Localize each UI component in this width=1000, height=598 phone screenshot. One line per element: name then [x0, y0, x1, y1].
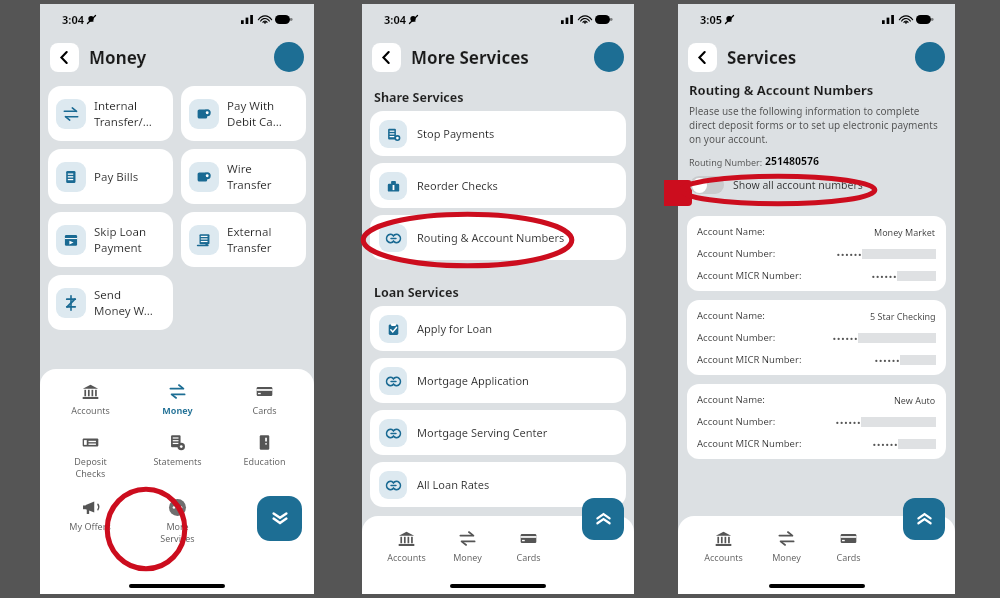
staticText: Payment	[94, 240, 142, 256]
staticText: Mortgage Application	[417, 373, 529, 388]
staticText: Money	[772, 551, 801, 563]
staticText: Cards	[836, 551, 861, 563]
staticText: Please use the following information to …	[689, 104, 944, 146]
staticText: Transfer	[227, 240, 272, 256]
button[interactable]: Internal	[48, 86, 173, 141]
staticText: 3:04	[384, 12, 406, 27]
staticText: Cards	[516, 551, 541, 563]
staticText: Transfer/…	[94, 114, 152, 130]
staticText: Debit Ca…	[227, 114, 282, 130]
staticText: Services	[727, 46, 797, 69]
staticText: All Loan Rates	[417, 477, 490, 492]
staticText: Show all account numbers	[733, 178, 863, 192]
staticText: Loan Services	[374, 284, 459, 301]
staticText: Education	[243, 455, 286, 467]
button[interactable]: Send	[48, 275, 173, 330]
button[interactable]: Back	[688, 43, 717, 72]
button[interactable]: Mortgage Application	[370, 358, 626, 403]
staticText: Money	[453, 551, 482, 563]
button[interactable]: Show all account numbers	[690, 176, 863, 194]
staticText: 3:05	[700, 12, 722, 27]
button[interactable]: Statements	[134, 432, 221, 469]
staticText: Account MICR Number:	[697, 437, 802, 450]
button[interactable]: Reorder Checks	[370, 163, 626, 208]
button[interactable]: Routing & Account Numbers	[370, 215, 626, 260]
button[interactable]: External	[181, 212, 306, 267]
staticText: Accounts	[387, 551, 426, 563]
button[interactable]: Account Name:	[687, 216, 946, 291]
staticText: Statements	[153, 455, 202, 467]
staticText: Mortgage Serving Center	[417, 425, 548, 440]
staticText: Accounts	[704, 551, 743, 563]
button[interactable]: Money	[134, 381, 221, 418]
button[interactable]: Back	[372, 43, 401, 72]
staticText: Routing Number:	[689, 156, 765, 168]
staticText: Wire	[227, 161, 252, 177]
staticText: Money W…	[94, 303, 153, 319]
staticText: Routing & Account Numbers	[417, 230, 565, 245]
button[interactable]: Scroll to top	[903, 498, 945, 540]
staticText: Pay With	[227, 98, 275, 114]
button[interactable]: Accounts	[376, 528, 437, 565]
button[interactable]: Mortgage Serving Center	[370, 410, 626, 455]
staticText: 251480576	[765, 154, 820, 168]
staticText: Stop Payments	[417, 126, 495, 141]
staticText: More Services	[411, 46, 529, 69]
staticText: Send	[94, 287, 121, 303]
button[interactable]: Apply for Loan	[370, 306, 626, 351]
button[interactable]: Account Name:	[687, 384, 946, 459]
button[interactable]: My Offers	[46, 497, 134, 534]
staticText: Internal	[94, 98, 137, 114]
button[interactable]: Cards	[498, 528, 559, 565]
button[interactable]: Skip Loan	[48, 212, 173, 267]
button[interactable]: Back	[50, 43, 79, 72]
staticText: Account Number:	[697, 247, 776, 260]
button[interactable]: Pay Bills	[48, 149, 173, 204]
button[interactable]: Profile	[594, 42, 624, 72]
button[interactable]: Scroll to top	[582, 498, 624, 540]
button[interactable]: Deposit Checks	[46, 432, 134, 481]
staticText: 3:04	[62, 12, 84, 27]
staticText: Reorder Checks	[417, 178, 498, 193]
staticText: Cards	[252, 404, 277, 416]
button[interactable]: Profile	[274, 42, 304, 72]
button[interactable]: Wire	[181, 149, 306, 204]
button[interactable]: Accounts	[692, 528, 755, 565]
button[interactable]: More Services	[134, 497, 221, 546]
staticText: Accounts	[71, 404, 110, 416]
button[interactable]: All Loan Rates	[370, 462, 626, 507]
staticText: Routing & Account Numbers	[689, 81, 874, 99]
staticText: Money	[162, 404, 193, 416]
staticText: Deposit Checks	[74, 455, 107, 479]
staticText: New Auto	[894, 394, 936, 406]
staticText: Money	[89, 46, 147, 69]
button[interactable]: Education	[221, 432, 308, 469]
staticText: Transfer	[227, 177, 272, 193]
staticText: Pay Bills	[94, 169, 139, 185]
staticText: External	[227, 224, 272, 240]
staticText: Apply for Loan	[417, 321, 493, 336]
staticText: 5 Star Checking	[870, 310, 936, 322]
staticText: My Offers	[69, 520, 111, 532]
button[interactable]: Cards	[221, 381, 308, 418]
button[interactable]: Pay With	[181, 86, 306, 141]
staticText: Account MICR Number:	[697, 269, 802, 282]
button[interactable]: Stop Payments	[370, 111, 626, 156]
button[interactable]: Account Name:	[687, 300, 946, 375]
staticText: Money Market	[874, 226, 936, 238]
staticText: Account Number:	[697, 415, 776, 428]
staticText: Account Name:	[697, 309, 765, 322]
staticText: Skip Loan	[94, 224, 147, 240]
button[interactable]: Cards	[817, 528, 879, 565]
button[interactable]: Profile	[915, 42, 945, 72]
button[interactable]: Accounts	[46, 381, 134, 418]
staticText: Share Services	[374, 89, 464, 106]
button[interactable]: Expand	[257, 496, 302, 541]
staticText: Account MICR Number:	[697, 353, 802, 366]
button[interactable]: Money	[755, 528, 817, 565]
staticText: Account Name:	[697, 393, 765, 406]
staticText: Account Number:	[697, 331, 776, 344]
staticText: More Services	[160, 520, 195, 544]
button[interactable]: Money	[437, 528, 498, 565]
staticText: Account Name:	[697, 225, 765, 238]
